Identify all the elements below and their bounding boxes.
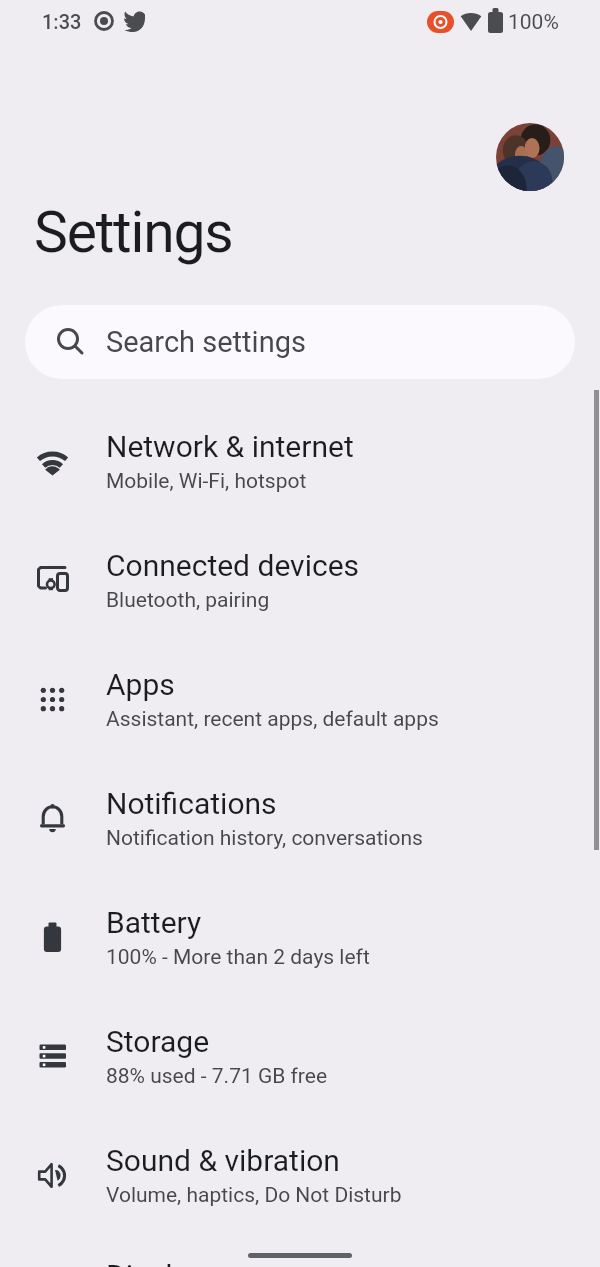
button[interactable]: Connected devices [0,521,600,640]
staticText: Mobile, Wi-Fi, hotspot [106,469,307,494]
button[interactable]: Search settings [25,305,575,379]
button[interactable] [496,123,564,191]
staticText: Display [106,1258,203,1267]
staticText: Bluetooth, pairing [106,588,270,613]
staticText: Apps [106,667,175,702]
staticText: 100% [508,10,559,35]
staticText: Notification history, conversations [106,826,423,851]
button[interactable]: Notifications [0,759,600,878]
staticText: Volume, haptics, Do Not Disturb [106,1183,402,1208]
staticText: Settings [34,199,233,266]
staticText: Battery [106,905,202,940]
staticText: Storage [106,1024,210,1059]
staticText: Notifications [106,786,277,821]
staticText: Connected devices [106,548,360,583]
button[interactable]: Apps [0,640,600,759]
staticText: Assistant, recent apps, default apps [106,707,439,732]
staticText: 1:33 [42,10,82,33]
staticText: 100% - More than 2 days left [106,945,370,970]
staticText: Sound & vibration [106,1143,340,1178]
button[interactable]: Sound & vibration [0,1116,600,1235]
button[interactable]: Display [0,1235,600,1267]
staticText: 88% used - 7.71 GB free [106,1064,328,1089]
button[interactable]: Network & internet [0,402,600,521]
button[interactable]: Battery [0,878,600,997]
staticText: Search settings [106,325,306,359]
staticText: Network & internet [106,429,354,464]
button[interactable]: Storage [0,997,600,1116]
